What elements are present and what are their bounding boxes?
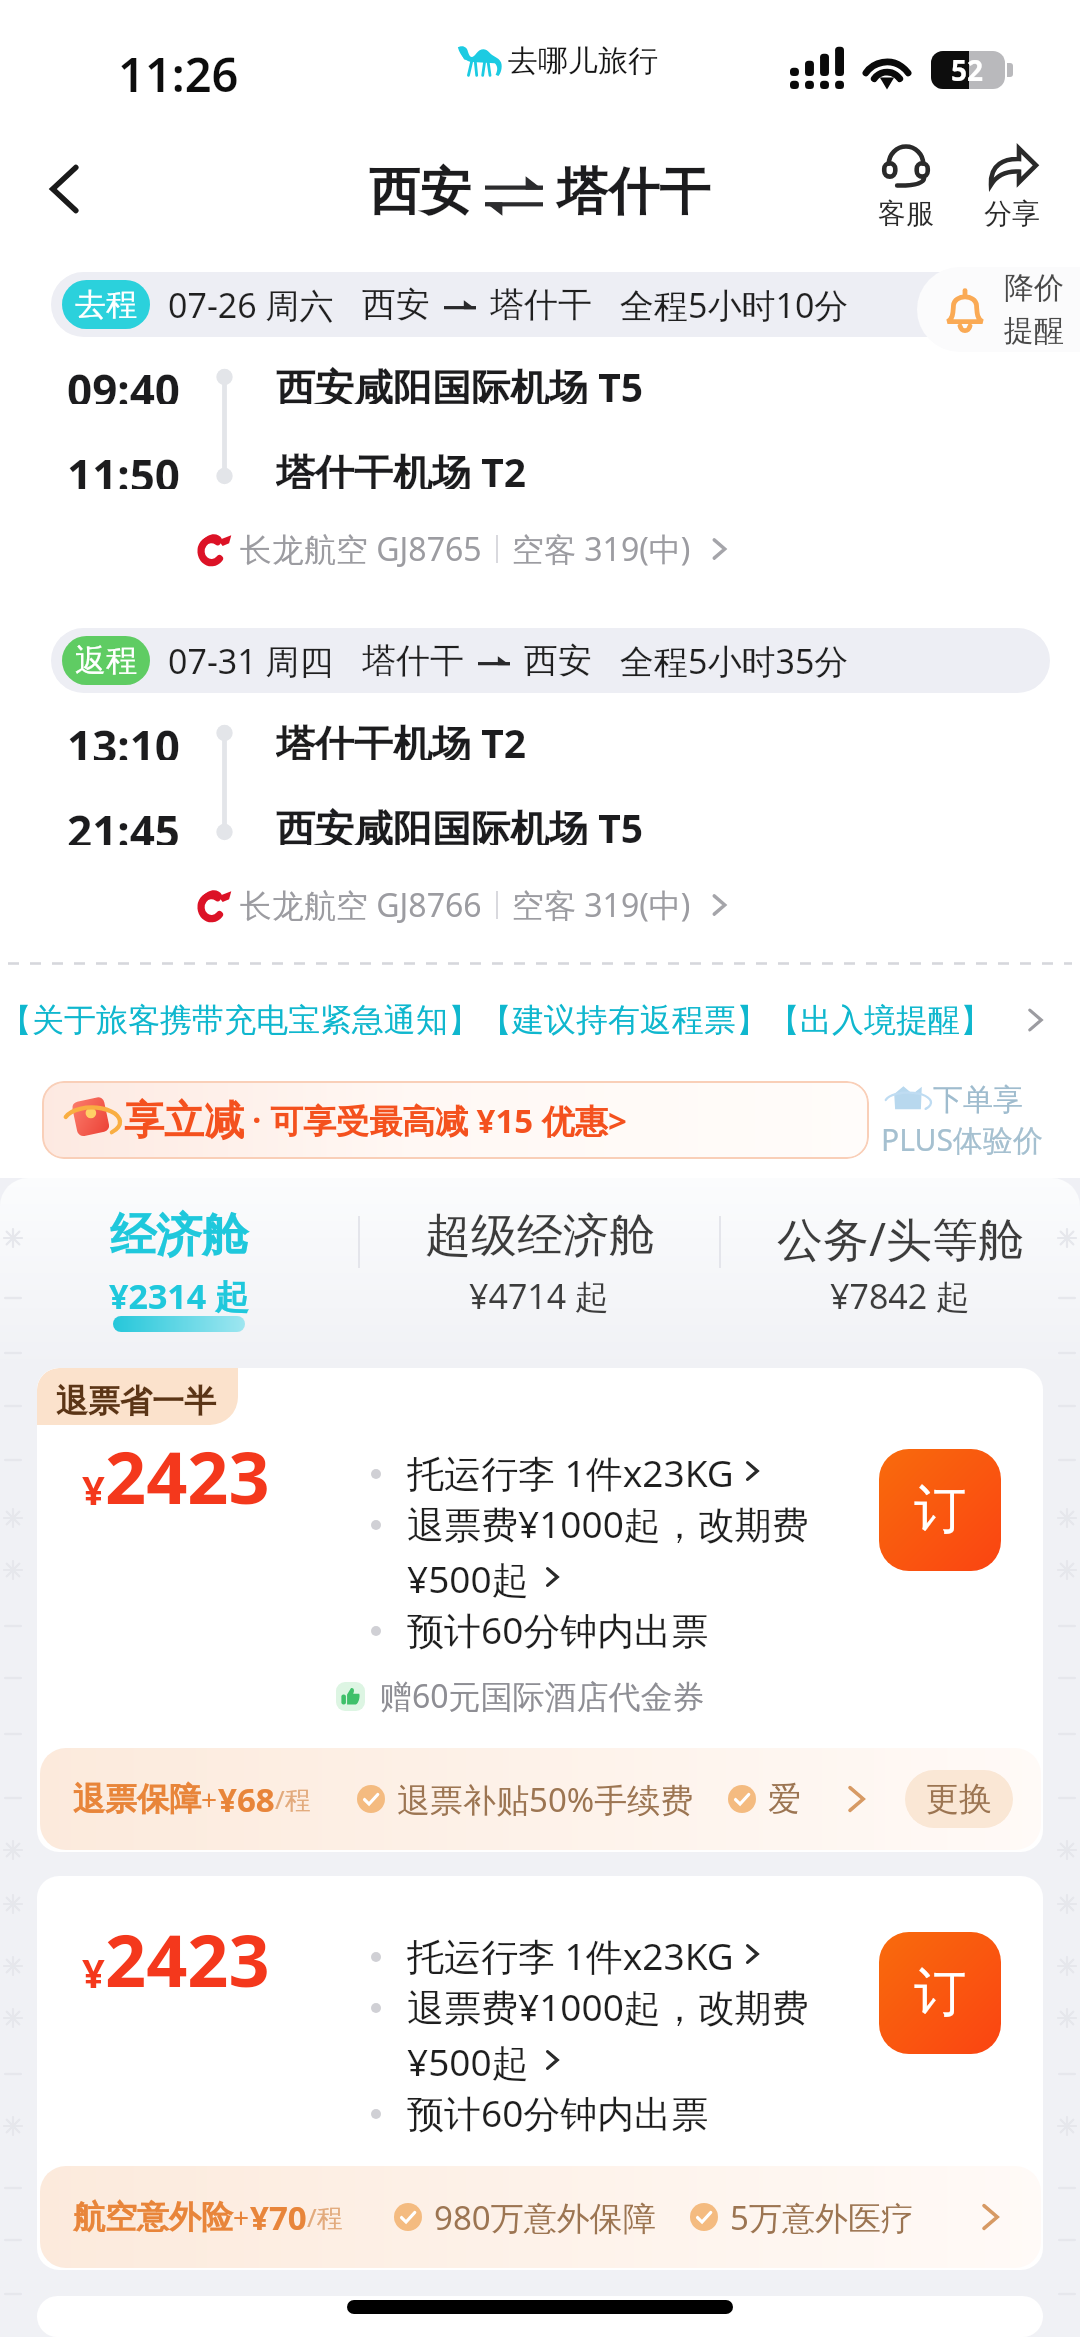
staticText: 空客 319(中) [512, 883, 691, 927]
staticText: 塔什干 [557, 160, 710, 224]
staticText: 预计60分钟内出票 [407, 1604, 709, 1655]
staticText: 爱 [768, 1778, 801, 1820]
staticText: 09:40 [67, 360, 181, 404]
staticText: 5万意外医疗 [730, 2195, 914, 2240]
staticText: 退票省一半 [56, 1381, 216, 1421]
button[interactable]: 超级经济舱 [360, 1178, 719, 1368]
button[interactable]: 经济舱 [0, 1178, 358, 1368]
staticText: 客服 [878, 196, 934, 231]
staticText: 退票费¥1000起，改期费 ¥500起 [407, 1981, 809, 2087]
staticText: 2423 [105, 1427, 270, 1525]
staticText: 07-31 周四 [168, 638, 334, 684]
staticText: ¥2314 起 [109, 1273, 250, 1319]
staticText: 订 [914, 1960, 966, 2026]
staticText: 西安咸阳国际机场 T5 [276, 801, 643, 845]
staticText: 西安咸阳国际机场 T5 [276, 360, 643, 404]
button[interactable]: 长龙航空 GJ8766 [196, 881, 731, 929]
staticText: 13:10 [67, 716, 181, 760]
staticText: 公务/头等舱 [777, 1207, 1025, 1270]
button[interactable]: Share [970, 140, 1054, 237]
staticText: 52 [951, 51, 984, 89]
button[interactable]: 订 [879, 1449, 1001, 1571]
staticText: 降价 [1004, 269, 1064, 307]
staticText: 订 [914, 1477, 966, 1543]
staticText: 返程 [75, 641, 137, 680]
button[interactable]: Back [26, 150, 104, 228]
staticText: ¥ [82, 1462, 105, 1516]
staticText: 托运行李 1件x23KG [407, 1930, 734, 1981]
staticText: 西安 [362, 283, 430, 326]
staticText: 【关于旅客携带充电宝紧急通知】【建议持有返程票】【出入境提醒】 [0, 1000, 992, 1040]
staticText: 享立减 [124, 1095, 244, 1145]
staticText: 11:26 [118, 42, 239, 106]
staticText: 西安 [524, 639, 592, 682]
staticText: /程 [275, 1781, 311, 1817]
staticText: 塔什干 [362, 639, 464, 682]
staticText: 空客 319(中) [512, 527, 691, 571]
staticText: ¥7842 起 [830, 1273, 971, 1319]
staticText: 长龙航空 GJ8766 [240, 883, 482, 927]
staticText: 西安 [369, 160, 471, 224]
staticText: 航空意外险 [73, 2197, 233, 2237]
staticText: 托运行李 1件x23KG [407, 1447, 734, 1498]
button[interactable]: Customer service [864, 140, 948, 237]
staticText: 21:45 [67, 801, 181, 845]
staticText: 980万意外保障 [434, 2195, 656, 2240]
staticText: /程 [307, 2199, 343, 2235]
staticText: 全程5小时10分 [620, 282, 849, 328]
staticText: 退票补贴50%手续费 [397, 1777, 694, 1822]
staticText: 去哪儿旅行 [508, 42, 658, 80]
staticText: + [201, 1780, 218, 1818]
button[interactable]: 订 [879, 1932, 1001, 2054]
staticText: 退票费¥1000起，改期费 ¥500起 [407, 1498, 809, 1604]
button[interactable]: 【关于旅客携带充电宝紧急通知】【建议持有返程票】【出入境提醒】 [0, 983, 1080, 1057]
staticText: 07-26 周六 [168, 282, 334, 328]
staticText: · [244, 1098, 270, 1142]
staticText: ¥ [82, 1945, 105, 1999]
staticText: 超级经济舱 [425, 1207, 655, 1265]
staticText: 去程 [75, 285, 137, 324]
staticText: 提醒 [1004, 312, 1064, 350]
staticText: ¥4714 起 [469, 1273, 610, 1319]
staticText: 预计60分钟内出票 [407, 2087, 709, 2138]
staticText: 经济舱 [110, 1207, 248, 1265]
staticText: 分享 [984, 196, 1040, 231]
staticText: 长龙航空 GJ8765 [240, 527, 482, 571]
staticText: 可享受最高减 ¥15 优惠 [270, 1098, 608, 1143]
staticText: 塔什干 [490, 283, 592, 326]
staticText: 塔什干机场 T2 [276, 716, 526, 760]
button[interactable]: 更换 [905, 1770, 1013, 1828]
staticText: 11:50 [67, 445, 181, 489]
staticText: ¥70 [250, 2195, 307, 2240]
staticText: 更换 [926, 1778, 992, 1820]
button[interactable]: 退票保障 [40, 1748, 1041, 1850]
staticText: 赠60元国际酒店代金券 [380, 1674, 705, 1718]
staticText: 退票保障 [73, 1779, 201, 1819]
button[interactable]: 降价 [917, 267, 1080, 352]
button[interactable]: 航空意外险 [40, 2166, 1041, 2268]
staticText: 塔什干机场 T2 [276, 445, 526, 489]
button[interactable]: 享立减 [42, 1081, 869, 1159]
staticText: + [233, 2198, 250, 2236]
staticText: 下单享 [933, 1081, 1023, 1119]
staticText: > [608, 1098, 627, 1143]
staticText: PLUS体验价 [881, 1119, 1043, 1160]
staticText: ¥68 [218, 1777, 275, 1822]
button[interactable]: 公务/头等舱 [721, 1178, 1080, 1368]
button[interactable]: 长龙航空 GJ8765 [196, 525, 731, 573]
staticText: 全程5小时35分 [620, 638, 849, 684]
staticText: 2423 [105, 1910, 270, 2008]
